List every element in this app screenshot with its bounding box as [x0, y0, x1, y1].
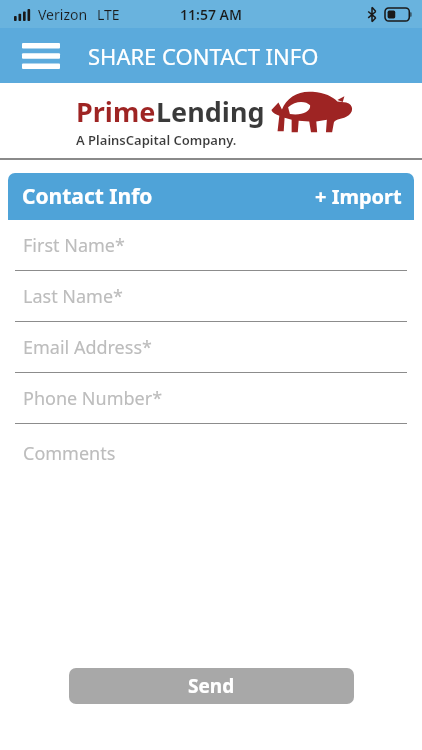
staticText: Last Name* [23, 284, 124, 309]
button[interactable]: Contact Info [22, 182, 153, 211]
staticText: Send [188, 673, 235, 699]
staticText: Email Address* [23, 335, 152, 360]
staticText: 11:57 AM [180, 5, 242, 24]
button[interactable]: Phone Number* [8, 373, 414, 424]
staticText: Contact Info [22, 182, 153, 211]
staticText: A PlainsCapital Company. [76, 131, 237, 149]
staticText: First Name* [23, 233, 125, 258]
button[interactable]: Send [69, 668, 354, 704]
staticText: Comments [23, 441, 116, 466]
button[interactable]: Last Name* [8, 271, 414, 322]
button[interactable]: Email Address* [8, 322, 414, 373]
button[interactable]: First Name* [8, 220, 414, 271]
staticText: Lending [156, 93, 265, 130]
staticText: Prime [76, 93, 156, 130]
button[interactable]: Comments [8, 424, 414, 586]
staticText: Verizon [38, 5, 88, 24]
staticText: Phone Number* [23, 386, 163, 411]
staticText: + Import [315, 183, 402, 210]
button[interactable]: + Import [315, 183, 402, 210]
staticText: SHARE CONTACT INFO [88, 41, 319, 71]
button[interactable]: Open navigation menu [18, 36, 64, 76]
staticText: LTE [97, 5, 120, 24]
